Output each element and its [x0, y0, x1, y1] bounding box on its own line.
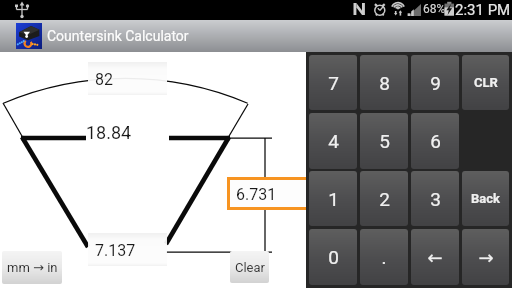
staticText: ←	[427, 247, 443, 268]
staticText: 9	[430, 72, 441, 94]
button[interactable]: CLR	[462, 55, 509, 110]
staticText: Clear	[235, 260, 265, 275]
staticText: 2	[379, 188, 390, 210]
button[interactable]: 7.137	[88, 233, 167, 266]
staticText: 4	[328, 130, 339, 152]
button[interactable]: Clear	[230, 251, 269, 283]
staticText: 6.731	[236, 185, 277, 204]
button[interactable]: mm → in	[2, 251, 62, 284]
button[interactable]: 2	[360, 171, 408, 226]
button[interactable]: 5	[360, 113, 408, 169]
button[interactable]: 9	[411, 55, 459, 110]
button[interactable]: 3	[411, 171, 459, 226]
staticText: 5	[379, 130, 390, 152]
button[interactable]: 6.731	[230, 180, 314, 207]
staticText: mm → in	[7, 260, 58, 275]
staticText: Back	[471, 191, 500, 206]
staticText: 7.137	[95, 241, 136, 260]
staticText: 2:31 PM	[455, 1, 511, 19]
staticText: 82	[95, 70, 113, 89]
staticText: 3	[430, 188, 441, 210]
staticText: 7	[328, 72, 339, 94]
staticText: 68%	[423, 2, 446, 16]
staticText: 18.84	[86, 122, 132, 143]
button[interactable]: 6	[411, 113, 459, 169]
staticText: →	[478, 247, 494, 268]
staticText: 1	[328, 188, 339, 210]
button[interactable]: .	[360, 229, 408, 285]
button[interactable]: 4	[309, 113, 357, 169]
staticText: CLR	[474, 75, 498, 90]
button[interactable]: 82	[88, 62, 167, 95]
staticText: Countersink Calculator	[47, 28, 189, 44]
button[interactable]: Right	[462, 229, 509, 285]
other: App icon	[16, 23, 42, 49]
button[interactable]: Back	[462, 171, 509, 226]
staticText: 0	[328, 246, 339, 268]
staticText: .	[381, 246, 387, 268]
staticText: 6	[430, 130, 441, 152]
button[interactable]: 1	[309, 171, 357, 226]
button[interactable]: Left	[411, 229, 459, 285]
button[interactable]: 0	[309, 229, 357, 285]
button[interactable]: 7	[309, 55, 357, 110]
staticText: 8	[379, 72, 390, 94]
button[interactable]: 8	[360, 55, 408, 110]
